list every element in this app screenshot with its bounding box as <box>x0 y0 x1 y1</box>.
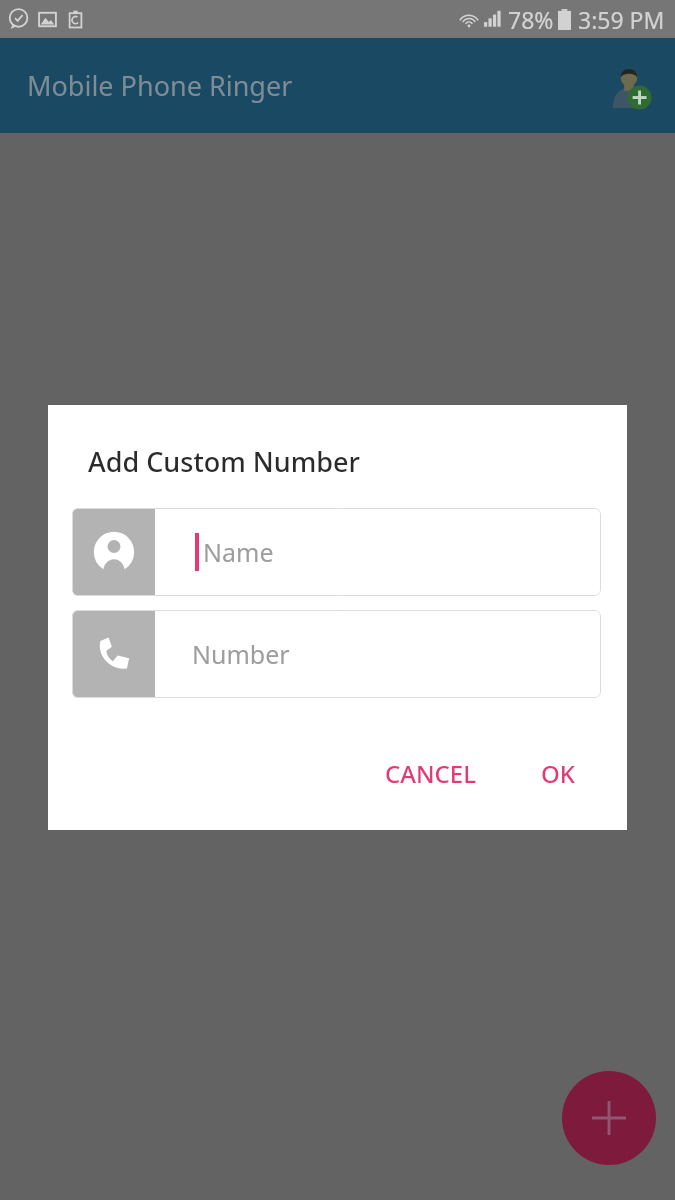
button[interactable]: Add contact <box>601 58 657 114</box>
staticText: Name <box>203 535 274 569</box>
button[interactable]: Number <box>72 610 601 698</box>
staticText: CANCEL <box>385 757 477 790</box>
staticText: 78% <box>508 4 554 35</box>
button[interactable]: Add <box>562 1071 656 1165</box>
staticText: 3:59 PM <box>578 4 665 35</box>
button[interactable]: OK <box>527 747 589 800</box>
staticText: Number <box>192 637 290 671</box>
staticText: Mobile Phone Ringer <box>27 67 293 104</box>
staticText: Add Custom Number <box>88 443 360 480</box>
button[interactable]: CANCEL <box>371 747 491 800</box>
staticText: OK <box>541 757 575 790</box>
button[interactable]: Name <box>72 508 601 596</box>
